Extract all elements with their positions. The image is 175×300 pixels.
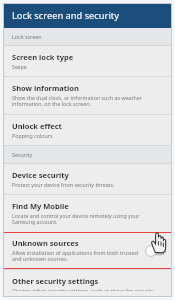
staticText: Swipe: [12, 63, 27, 70]
staticText: Locate and control your device remotely …: [12, 212, 164, 226]
staticText: Change other security settings, such as …: [12, 287, 164, 291]
button[interactable]: Show information: [3, 77, 172, 114]
staticText: Lock screen: [12, 33, 42, 40]
button[interactable]: Unlock effect: [3, 115, 172, 145]
button[interactable]: Device security: [3, 164, 172, 194]
staticText: Unlock effect: [12, 121, 62, 131]
button[interactable]: Unknown sources, off: [145, 245, 166, 257]
staticText: Security: [12, 151, 33, 158]
button[interactable]: Other security settings: [3, 270, 172, 297]
staticText: Show information: [12, 83, 79, 93]
button[interactable]: Find My Mobile: [3, 195, 172, 232]
staticText: Allow installation of applications from …: [12, 249, 141, 263]
staticText: Other security settings: [12, 276, 99, 286]
staticText: Unknown sources: [12, 238, 79, 248]
staticText: Lock screen and security: [12, 9, 119, 22]
staticText: Find My Mobile: [12, 201, 69, 211]
staticText: Screen lock type: [12, 52, 74, 62]
staticText: Popping colours: [12, 132, 53, 139]
button[interactable]: Unknown sources: [3, 232, 172, 269]
staticText: Protect your device from security threat…: [12, 181, 115, 188]
button[interactable]: Screen lock type: [3, 46, 172, 76]
staticText: Show the dual clock, or information such…: [12, 94, 164, 108]
staticText: Device security: [12, 170, 69, 180]
